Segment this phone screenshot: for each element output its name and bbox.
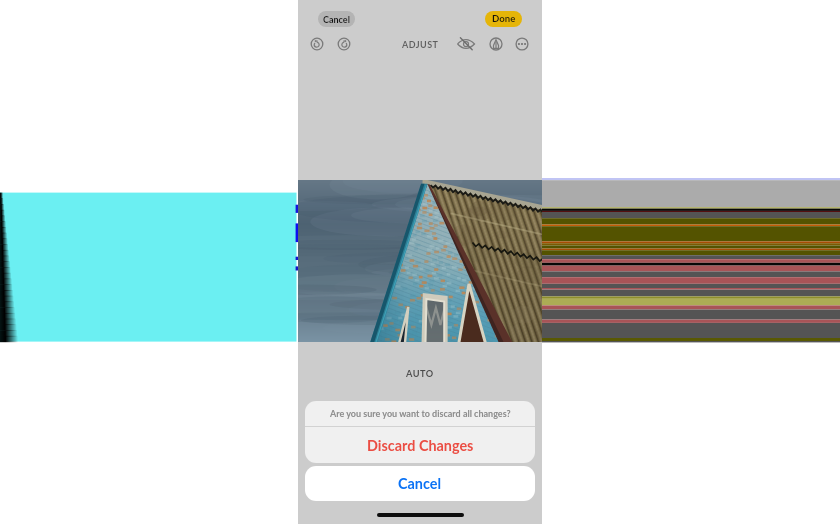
button[interactable]: Cancel: [318, 11, 355, 27]
button[interactable]: More options: [512, 34, 532, 54]
staticText: ADJUST: [402, 39, 439, 50]
button[interactable]: AUTO: [393, 367, 447, 379]
staticText: Cancel: [323, 14, 350, 25]
button[interactable]: Markup: [486, 34, 506, 54]
button[interactable]: Done: [485, 11, 522, 27]
button[interactable]: Undo: [307, 34, 327, 54]
button[interactable]: Discard Changes: [305, 427, 535, 463]
button[interactable]: Redo: [334, 34, 354, 54]
staticText: Done: [492, 13, 516, 25]
staticText: Cancel: [398, 475, 442, 492]
staticText: Are you sure you want to discard all cha…: [330, 408, 511, 419]
button[interactable]: Hide adjustments: [456, 34, 476, 54]
button[interactable]: ADJUST: [393, 37, 447, 51]
staticText: Discard Changes: [367, 437, 474, 454]
button[interactable]: Cancel: [305, 466, 535, 501]
staticText: AUTO: [406, 368, 434, 379]
